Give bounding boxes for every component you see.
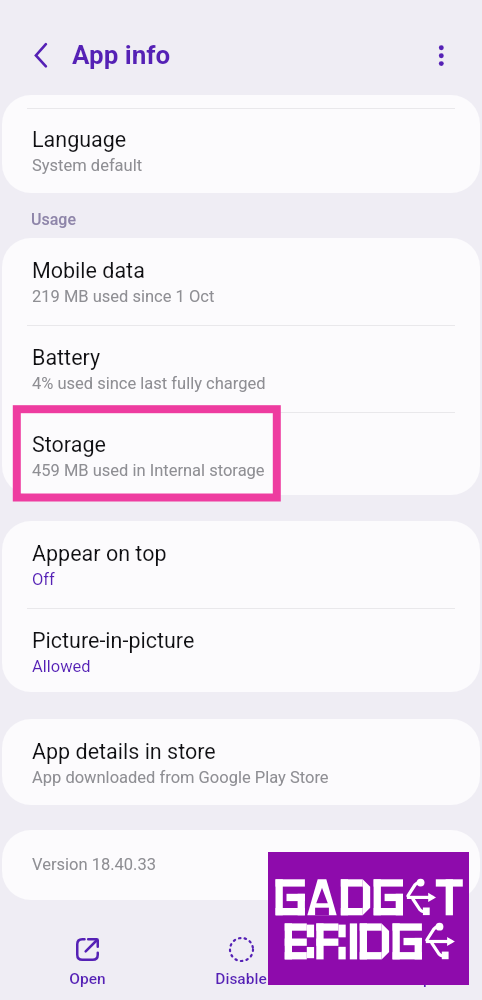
staticText: Language [32, 127, 127, 152]
staticText: Mobile data [32, 258, 145, 283]
button[interactable]: Disable [164, 900, 318, 1000]
staticText: 459 MB used in Internal storage [32, 461, 265, 480]
staticText: Battery [32, 345, 101, 370]
staticText: Storage [32, 432, 106, 457]
button[interactable]: Storage [2, 412, 480, 495]
staticText: Version 18.40.33 [32, 855, 156, 874]
staticText: Picture-in-picture [32, 628, 195, 653]
staticText: App details in store [32, 739, 216, 764]
staticText: Disable [215, 970, 267, 988]
staticText: App info [72, 40, 171, 70]
button[interactable]: Mobile data [2, 238, 480, 325]
staticText: 4% used since last fully charged [32, 374, 266, 393]
button[interactable]: Navigate up [24, 39, 58, 73]
staticText: Allowed [32, 657, 91, 676]
button[interactable]: Battery [2, 325, 480, 411]
button[interactable]: Picture-in-picture [2, 608, 480, 692]
button[interactable]: Language [2, 108, 480, 193]
staticText: Off [32, 570, 55, 589]
button[interactable]: App details in store [2, 719, 480, 805]
button[interactable]: Open [10, 900, 164, 1000]
staticText: Usage [31, 210, 76, 229]
button[interactable]: Force stop [318, 900, 472, 1000]
button[interactable]: More options [425, 39, 459, 73]
staticText: App downloaded from Google Play Store [32, 768, 329, 787]
staticText: 219 MB used since 1 Oct [32, 287, 215, 306]
staticText: Open [69, 970, 106, 988]
staticText: System default [32, 156, 143, 175]
staticText: Appear on top [32, 541, 167, 566]
button[interactable]: Appear on top [2, 521, 480, 608]
staticText: Force stop [358, 970, 432, 988]
